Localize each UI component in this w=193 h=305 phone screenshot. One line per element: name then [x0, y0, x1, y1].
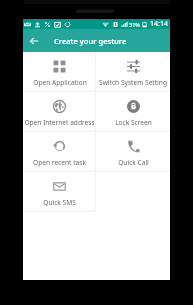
button[interactable]: Open Application [23, 52, 96, 92]
button[interactable]: Back [23, 29, 44, 52]
staticText: Switch System Setting [99, 78, 167, 87]
staticText: Create your gesture [54, 36, 127, 46]
button[interactable]: Lock Screen [96, 92, 170, 132]
button[interactable]: Switch System Setting [96, 52, 170, 92]
button[interactable]: Open recent task [23, 132, 96, 172]
button[interactable]: Quick SMS [23, 172, 96, 212]
button[interactable]: Open Internet address [23, 92, 96, 132]
staticText: 31% [129, 21, 140, 28]
staticText: Open Application [33, 78, 87, 87]
staticText: Quick SMS [43, 198, 76, 207]
staticText: 14:14 [150, 19, 168, 29]
staticText: Open recent task [33, 158, 86, 167]
staticText: Open Internet address [24, 118, 95, 127]
staticText: Quick Call [118, 158, 149, 167]
button[interactable]: Quick Call [96, 132, 170, 172]
staticText: Lock Screen [115, 118, 152, 127]
